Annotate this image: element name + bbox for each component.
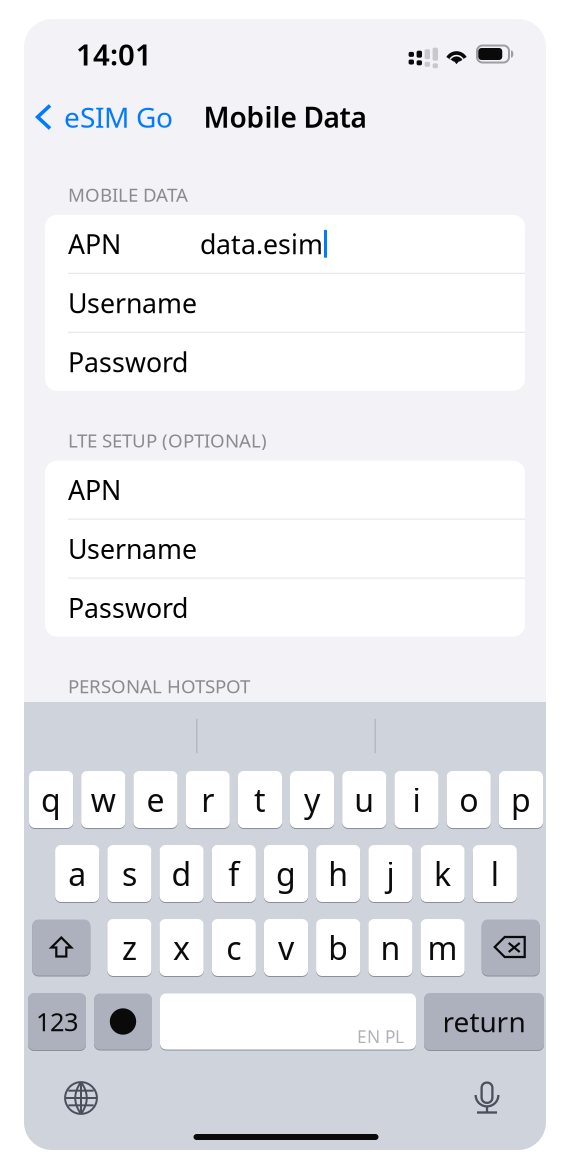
staticText: m [428, 926, 458, 969]
button[interactable]: l [473, 844, 517, 903]
button[interactable]: s [107, 844, 151, 903]
staticText: APN [68, 472, 121, 507]
button[interactable]: y [290, 770, 334, 829]
button[interactable]: o [447, 770, 491, 829]
staticText: p [511, 778, 531, 821]
button[interactable]: v [264, 918, 308, 977]
button[interactable]: h [316, 844, 360, 903]
staticText: l [491, 852, 499, 895]
staticText: b [328, 926, 348, 969]
button[interactable]: m [420, 918, 465, 977]
button[interactable]: p [499, 770, 543, 829]
button[interactable]: eSIM Go [31, 90, 177, 144]
button[interactable]: t [238, 770, 282, 829]
staticText: i [412, 778, 420, 821]
button[interactable]: g [264, 844, 308, 903]
button[interactable]: Shift [32, 918, 90, 976]
staticText: r [201, 778, 214, 821]
button[interactable]: Next keyboard [54, 1071, 108, 1125]
staticText: LTE SETUP (OPTIONAL) [68, 428, 267, 453]
staticText: Username [68, 531, 197, 566]
staticText: return [442, 1003, 525, 1040]
button[interactable]: r [186, 770, 230, 829]
staticText: o [459, 778, 478, 821]
button[interactable]: f [212, 844, 256, 903]
staticText: Password [68, 590, 188, 625]
staticText: y [304, 778, 320, 821]
button[interactable]: d [159, 844, 204, 903]
staticText: v [278, 926, 294, 969]
staticText: Password [68, 344, 188, 379]
button[interactable]: Space [160, 992, 416, 1050]
staticText: Mobile Data [203, 98, 366, 136]
staticText: c [226, 926, 241, 969]
button[interactable]: u [342, 770, 386, 829]
button[interactable]: q [29, 770, 73, 829]
staticText: g [276, 852, 296, 895]
button[interactable]: e [133, 770, 178, 829]
staticText: h [328, 852, 348, 895]
staticText: f [228, 852, 239, 895]
staticText: t [254, 778, 266, 821]
button[interactable]: n [368, 918, 412, 977]
staticText: z [122, 926, 137, 969]
button[interactable]: i [394, 770, 439, 829]
staticText: 123 [36, 1005, 78, 1038]
staticText: k [434, 852, 451, 895]
staticText: x [173, 926, 190, 969]
staticText: w [91, 778, 116, 821]
staticText: Username [68, 285, 197, 320]
button[interactable]: a [55, 844, 99, 903]
button[interactable]: j [368, 844, 412, 903]
staticText: q [41, 778, 61, 821]
button[interactable]: 123 [28, 992, 86, 1051]
staticText: e [146, 778, 164, 821]
button[interactable]: b [316, 918, 360, 977]
button[interactable]: k [420, 844, 465, 903]
staticText: PERSONAL HOTSPOT [68, 674, 250, 698]
button[interactable]: w [81, 770, 125, 829]
button[interactable]: Delete [482, 918, 540, 976]
staticText: a [68, 852, 86, 895]
staticText: d [172, 852, 192, 895]
button[interactable]: c [212, 918, 256, 977]
button[interactable]: Emoji [94, 992, 152, 1050]
staticText: APN [68, 226, 121, 261]
button[interactable]: x [159, 918, 204, 977]
staticText: EN PL [357, 1025, 404, 1048]
staticText: j [386, 852, 394, 895]
staticText: MOBILE DATA [68, 182, 188, 207]
staticText: s [122, 852, 137, 895]
staticText: n [380, 926, 400, 969]
staticText: 14:01 [76, 34, 152, 73]
button[interactable]: Dictate [462, 1070, 512, 1125]
staticText: u [354, 778, 374, 821]
staticText: eSIM Go [64, 98, 173, 136]
button[interactable]: z [107, 918, 151, 977]
staticText: data.esim [200, 226, 323, 261]
button[interactable]: return [424, 992, 544, 1051]
